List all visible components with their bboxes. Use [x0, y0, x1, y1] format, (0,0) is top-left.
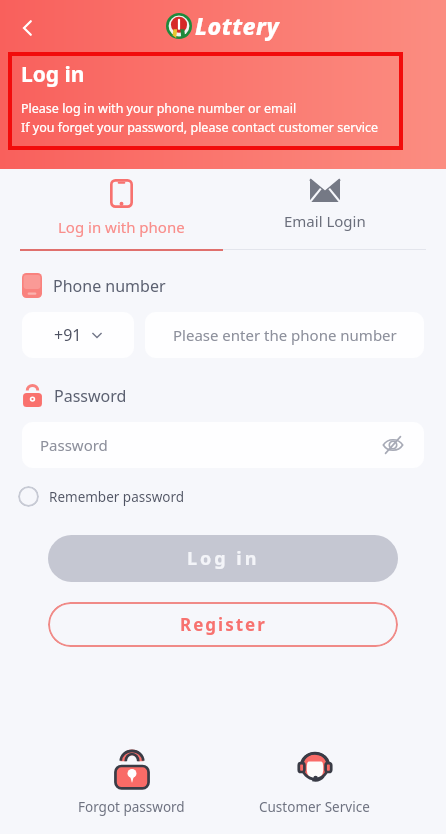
button[interactable]: Password — [22, 422, 424, 468]
staticText: Forgot password — [78, 798, 185, 816]
button[interactable]: Back — [8, 8, 48, 48]
staticText: Log in with phone — [58, 217, 185, 237]
staticText: Phone number — [53, 275, 166, 297]
staticText: Log in — [21, 60, 85, 89]
button[interactable]: Forgot password — [40, 750, 223, 816]
staticText: Register — [180, 613, 267, 636]
staticText: Remember password — [49, 488, 185, 506]
staticText: If you forget your password, please cont… — [21, 119, 379, 136]
staticText: Password — [54, 385, 127, 407]
staticText: Please log in with your phone number or … — [21, 100, 297, 117]
button[interactable]: Please enter the phone number — [145, 312, 424, 358]
button[interactable]: Register — [48, 602, 398, 647]
staticText: +91 — [54, 324, 82, 346]
button[interactable]: +91 — [22, 312, 134, 358]
button[interactable]: Remember password — [18, 486, 185, 507]
staticText: Log in — [187, 546, 260, 571]
staticText: Please enter the phone number — [173, 325, 397, 345]
staticText: Customer Service — [259, 798, 370, 816]
staticText: Email Login — [284, 211, 366, 231]
button[interactable]: Log in with phone — [20, 177, 223, 239]
staticText: Lottery — [195, 10, 280, 41]
button[interactable]: Customer Service — [223, 750, 406, 816]
button[interactable]: Log in — [48, 535, 398, 582]
button[interactable]: Show password — [380, 432, 406, 458]
button[interactable]: Email Login — [223, 177, 426, 233]
staticText: Password — [40, 435, 108, 455]
